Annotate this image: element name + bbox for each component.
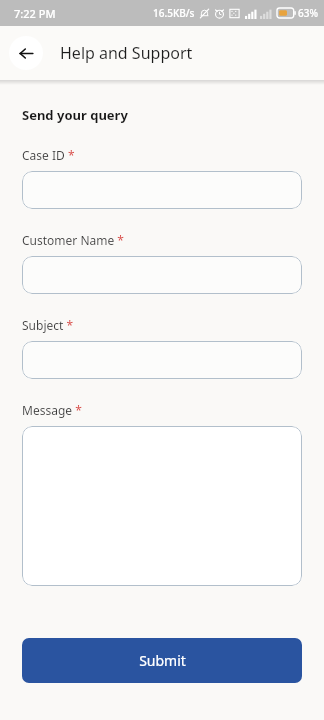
staticText: Send your query [22,106,128,124]
button[interactable]: Submit [22,638,302,683]
button[interactable] [22,171,302,209]
staticText: 63% [298,6,318,20]
staticText: 7:22 PM [14,6,56,21]
button[interactable] [22,256,302,294]
button[interactable] [22,341,302,379]
staticText: Subject * [22,317,74,333]
staticText: Help and Support [60,42,193,64]
staticText: Case ID * [22,147,75,163]
staticText: 16.5KB/s [153,6,195,20]
button[interactable]: Back [9,36,43,70]
staticText: Customer Name * [22,232,124,248]
staticText: Submit [139,651,186,670]
button[interactable] [22,426,302,586]
staticText: Message * [22,402,82,418]
